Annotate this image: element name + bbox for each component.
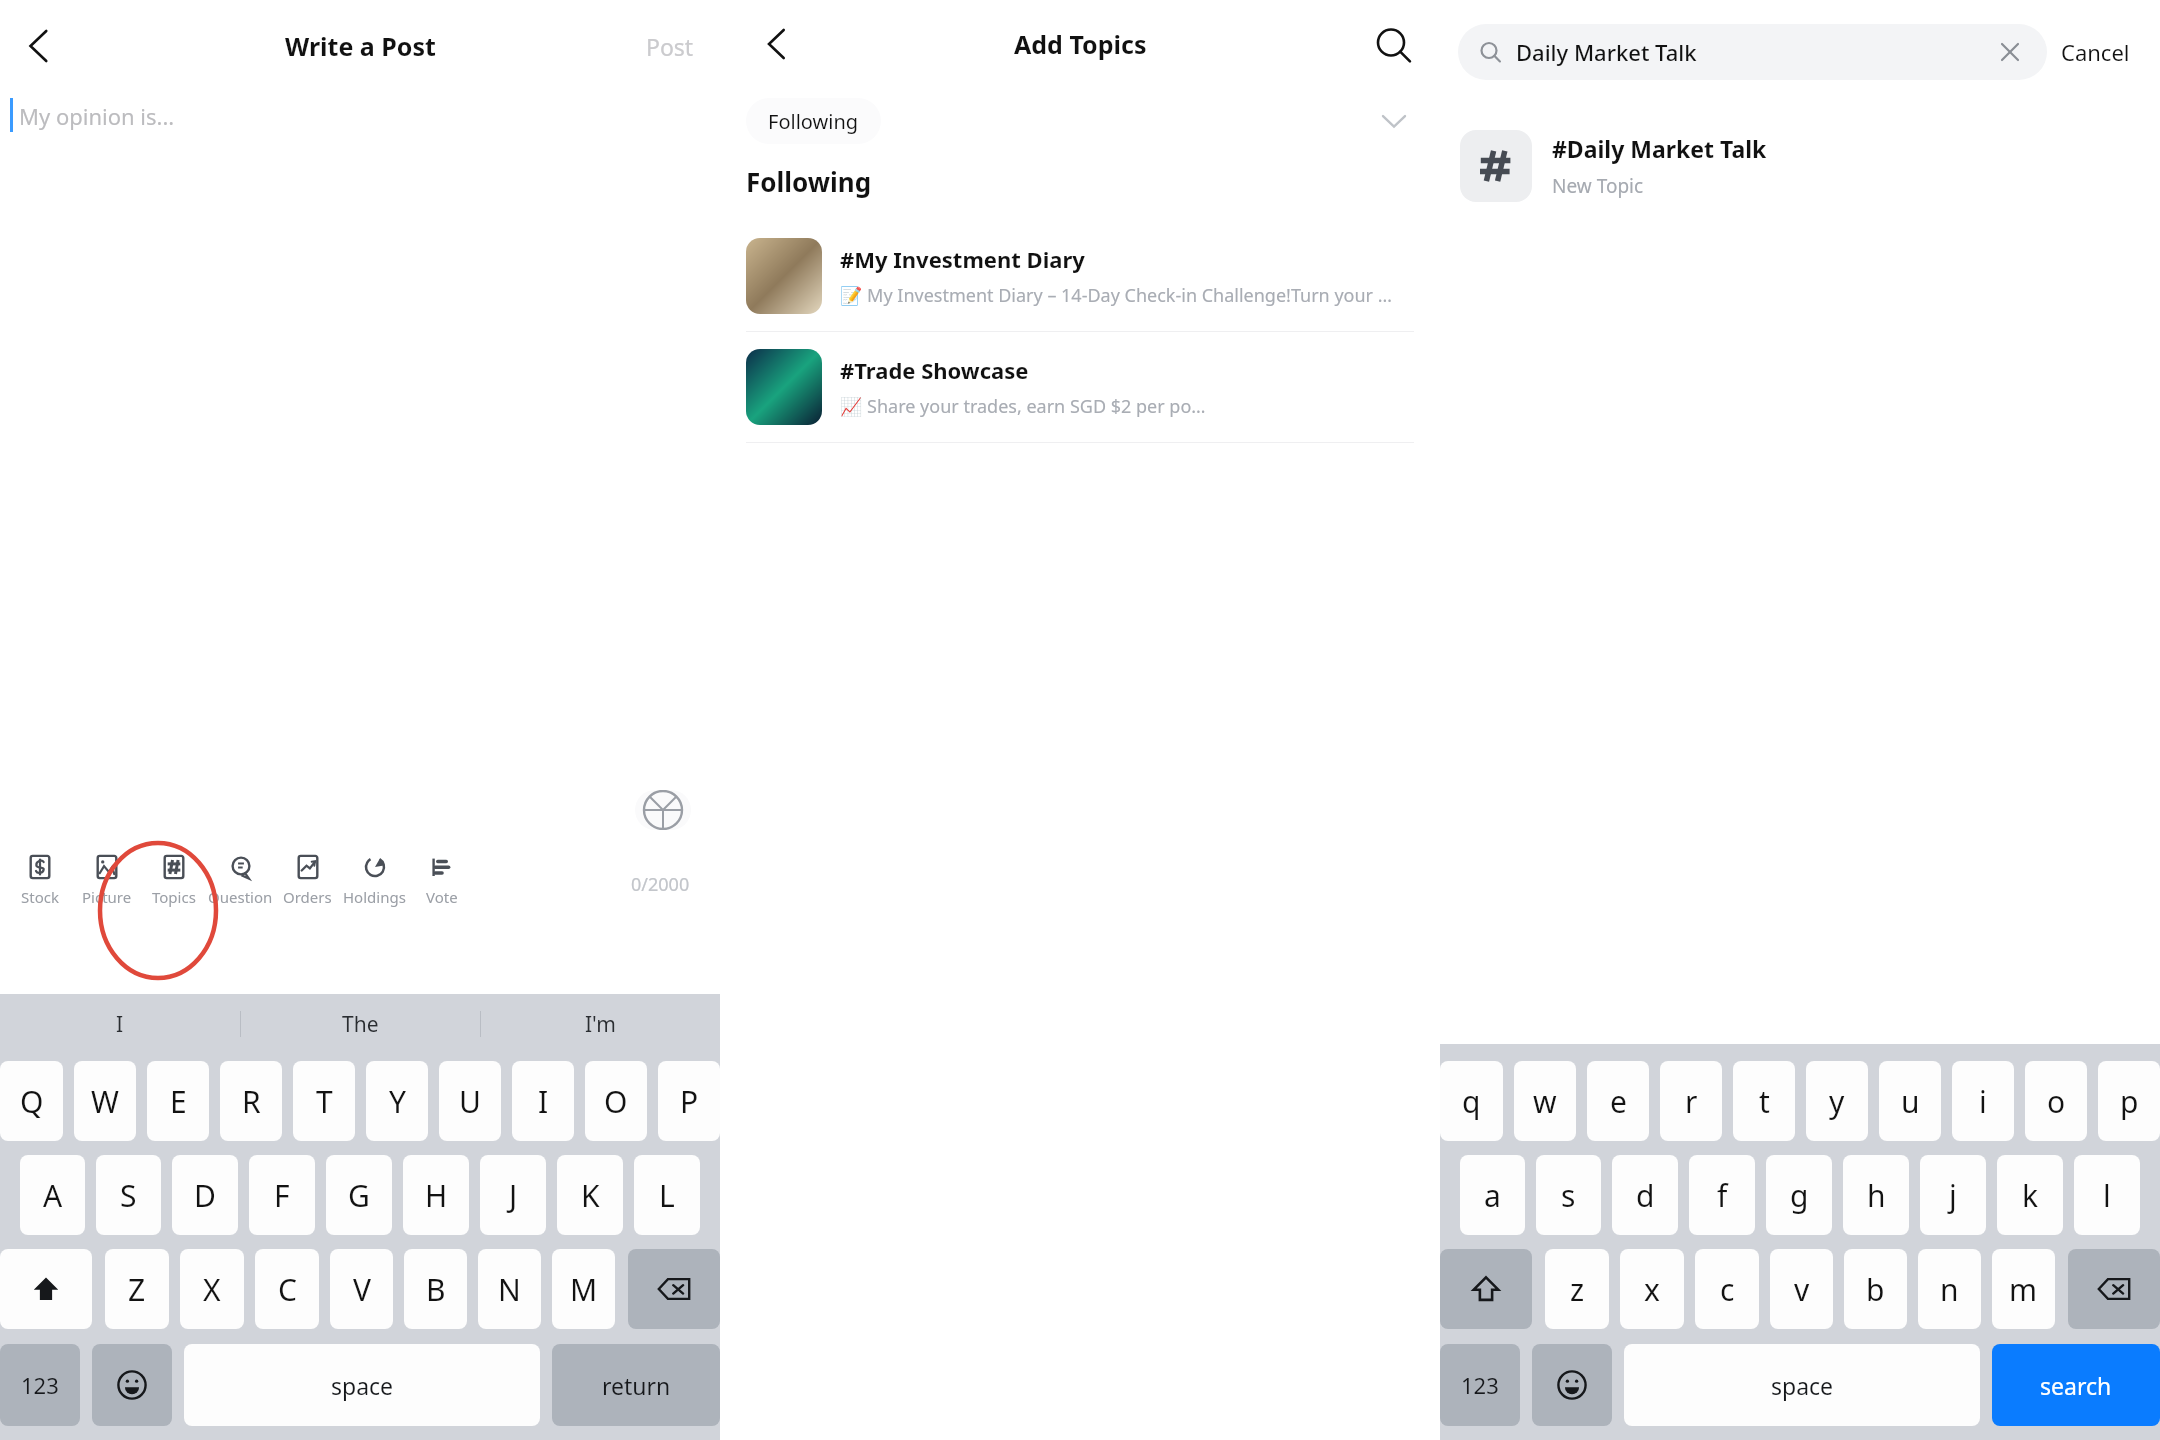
button[interactable]: P [658, 1061, 720, 1141]
button[interactable]: f [1689, 1155, 1755, 1235]
staticText: X [203, 1269, 221, 1310]
staticText: d [1636, 1175, 1655, 1216]
button[interactable]: Backspace [628, 1249, 720, 1329]
button[interactable]: Question [207, 846, 274, 907]
button[interactable]: N [478, 1249, 541, 1329]
button[interactable]: d [1612, 1155, 1678, 1235]
button[interactable]: Vote [408, 846, 475, 907]
button[interactable]: Orders [274, 846, 341, 907]
button[interactable]: Picture [73, 846, 140, 907]
button[interactable]: g [1766, 1155, 1832, 1235]
button[interactable]: O [585, 1061, 647, 1141]
staticText: h [1867, 1175, 1886, 1216]
button[interactable]: The [241, 994, 480, 1054]
button[interactable]: p [2098, 1061, 2160, 1141]
button[interactable]: Z [105, 1249, 169, 1329]
button[interactable]: #Daily Market Talk [1440, 114, 2160, 218]
staticText: Post [646, 31, 694, 62]
button[interactable]: r [1660, 1061, 1722, 1141]
button[interactable]: w [1514, 1061, 1576, 1141]
button[interactable]: i [1952, 1061, 2014, 1141]
button[interactable]: 123 [1440, 1344, 1520, 1426]
button[interactable]: Emoji [1532, 1344, 1612, 1426]
button[interactable]: z [1545, 1249, 1609, 1329]
staticText: Daily Market Talk [1516, 37, 1993, 67]
button[interactable]: Cancel [2047, 29, 2144, 75]
button[interactable]: j [1920, 1155, 1986, 1235]
button[interactable]: Backspace [2068, 1249, 2160, 1329]
button[interactable]: G [326, 1155, 392, 1235]
button[interactable]: y [1806, 1061, 1868, 1141]
button[interactable]: o [2025, 1061, 2087, 1141]
button[interactable]: l [2074, 1155, 2140, 1235]
button[interactable]: Back [10, 18, 66, 74]
button[interactable]: E [147, 1061, 209, 1141]
button[interactable]: c [1695, 1249, 1759, 1329]
button[interactable]: H [403, 1155, 469, 1235]
button[interactable]: X [180, 1249, 244, 1329]
button[interactable]: W [74, 1061, 136, 1141]
button[interactable]: L [634, 1155, 700, 1235]
button[interactable]: F [249, 1155, 315, 1235]
button[interactable]: m [1992, 1249, 2055, 1329]
button[interactable]: Clear [1993, 35, 2027, 69]
staticText: S [120, 1175, 137, 1216]
button[interactable]: q [1440, 1061, 1503, 1141]
button[interactable]: Visibility [635, 790, 691, 830]
button[interactable]: I'm [481, 994, 720, 1054]
button[interactable]: return [552, 1344, 720, 1426]
staticText: c [1720, 1269, 1735, 1310]
staticText: 📝 My Investment Diary – 14-Day Check-in … [840, 283, 1392, 308]
button[interactable]: space [1624, 1344, 1980, 1426]
button[interactable]: k [1997, 1155, 2063, 1235]
button[interactable]: Daily Market Talk [1458, 24, 2047, 80]
button[interactable]: b [1844, 1249, 1907, 1329]
button[interactable]: Y [366, 1061, 428, 1141]
button[interactable]: R [220, 1061, 282, 1141]
button[interactable]: e [1587, 1061, 1649, 1141]
staticText: I [116, 1010, 124, 1039]
button[interactable]: v [1770, 1249, 1833, 1329]
button[interactable]: h [1843, 1155, 1909, 1235]
button[interactable]: search [1992, 1344, 2160, 1426]
button[interactable]: B [404, 1249, 467, 1329]
button[interactable]: u [1879, 1061, 1941, 1141]
button[interactable]: Topics [140, 846, 207, 907]
staticText: m [2009, 1269, 2038, 1310]
button[interactable]: Search [1366, 18, 1418, 70]
button[interactable]: Emoji [92, 1344, 172, 1426]
button[interactable]: space [184, 1344, 540, 1426]
button[interactable]: #My Investment Diary [720, 221, 1440, 331]
button[interactable]: a [1460, 1155, 1525, 1235]
button[interactable]: Expand [1372, 99, 1416, 143]
button[interactable]: s [1536, 1155, 1601, 1235]
staticText: W [91, 1081, 119, 1122]
button[interactable]: I [512, 1061, 574, 1141]
button[interactable]: I [0, 994, 240, 1054]
button[interactable]: t [1733, 1061, 1795, 1141]
button[interactable]: x [1620, 1249, 1684, 1329]
staticText: return [602, 1370, 671, 1401]
staticText: L [659, 1175, 675, 1216]
button[interactable]: A [20, 1155, 85, 1235]
button[interactable]: Stock [6, 846, 73, 907]
button[interactable]: S [96, 1155, 161, 1235]
button[interactable]: n [1918, 1249, 1981, 1329]
button[interactable]: Following [768, 98, 859, 144]
button[interactable]: #Trade Showcase [720, 332, 1440, 442]
button[interactable]: C [255, 1249, 319, 1329]
button[interactable]: T [293, 1061, 355, 1141]
button[interactable]: Shift [1440, 1249, 1532, 1329]
button[interactable]: K [557, 1155, 623, 1235]
button[interactable]: Shift [0, 1249, 92, 1329]
button[interactable]: Back [750, 18, 802, 70]
button[interactable]: Post [646, 31, 694, 62]
button[interactable]: M [552, 1249, 615, 1329]
button[interactable]: 123 [0, 1344, 80, 1426]
button[interactable]: Q [0, 1061, 63, 1141]
button[interactable]: D [172, 1155, 238, 1235]
button[interactable]: Holdings [341, 846, 408, 907]
button[interactable]: U [439, 1061, 501, 1141]
button[interactable]: V [330, 1249, 393, 1329]
button[interactable]: J [480, 1155, 546, 1235]
